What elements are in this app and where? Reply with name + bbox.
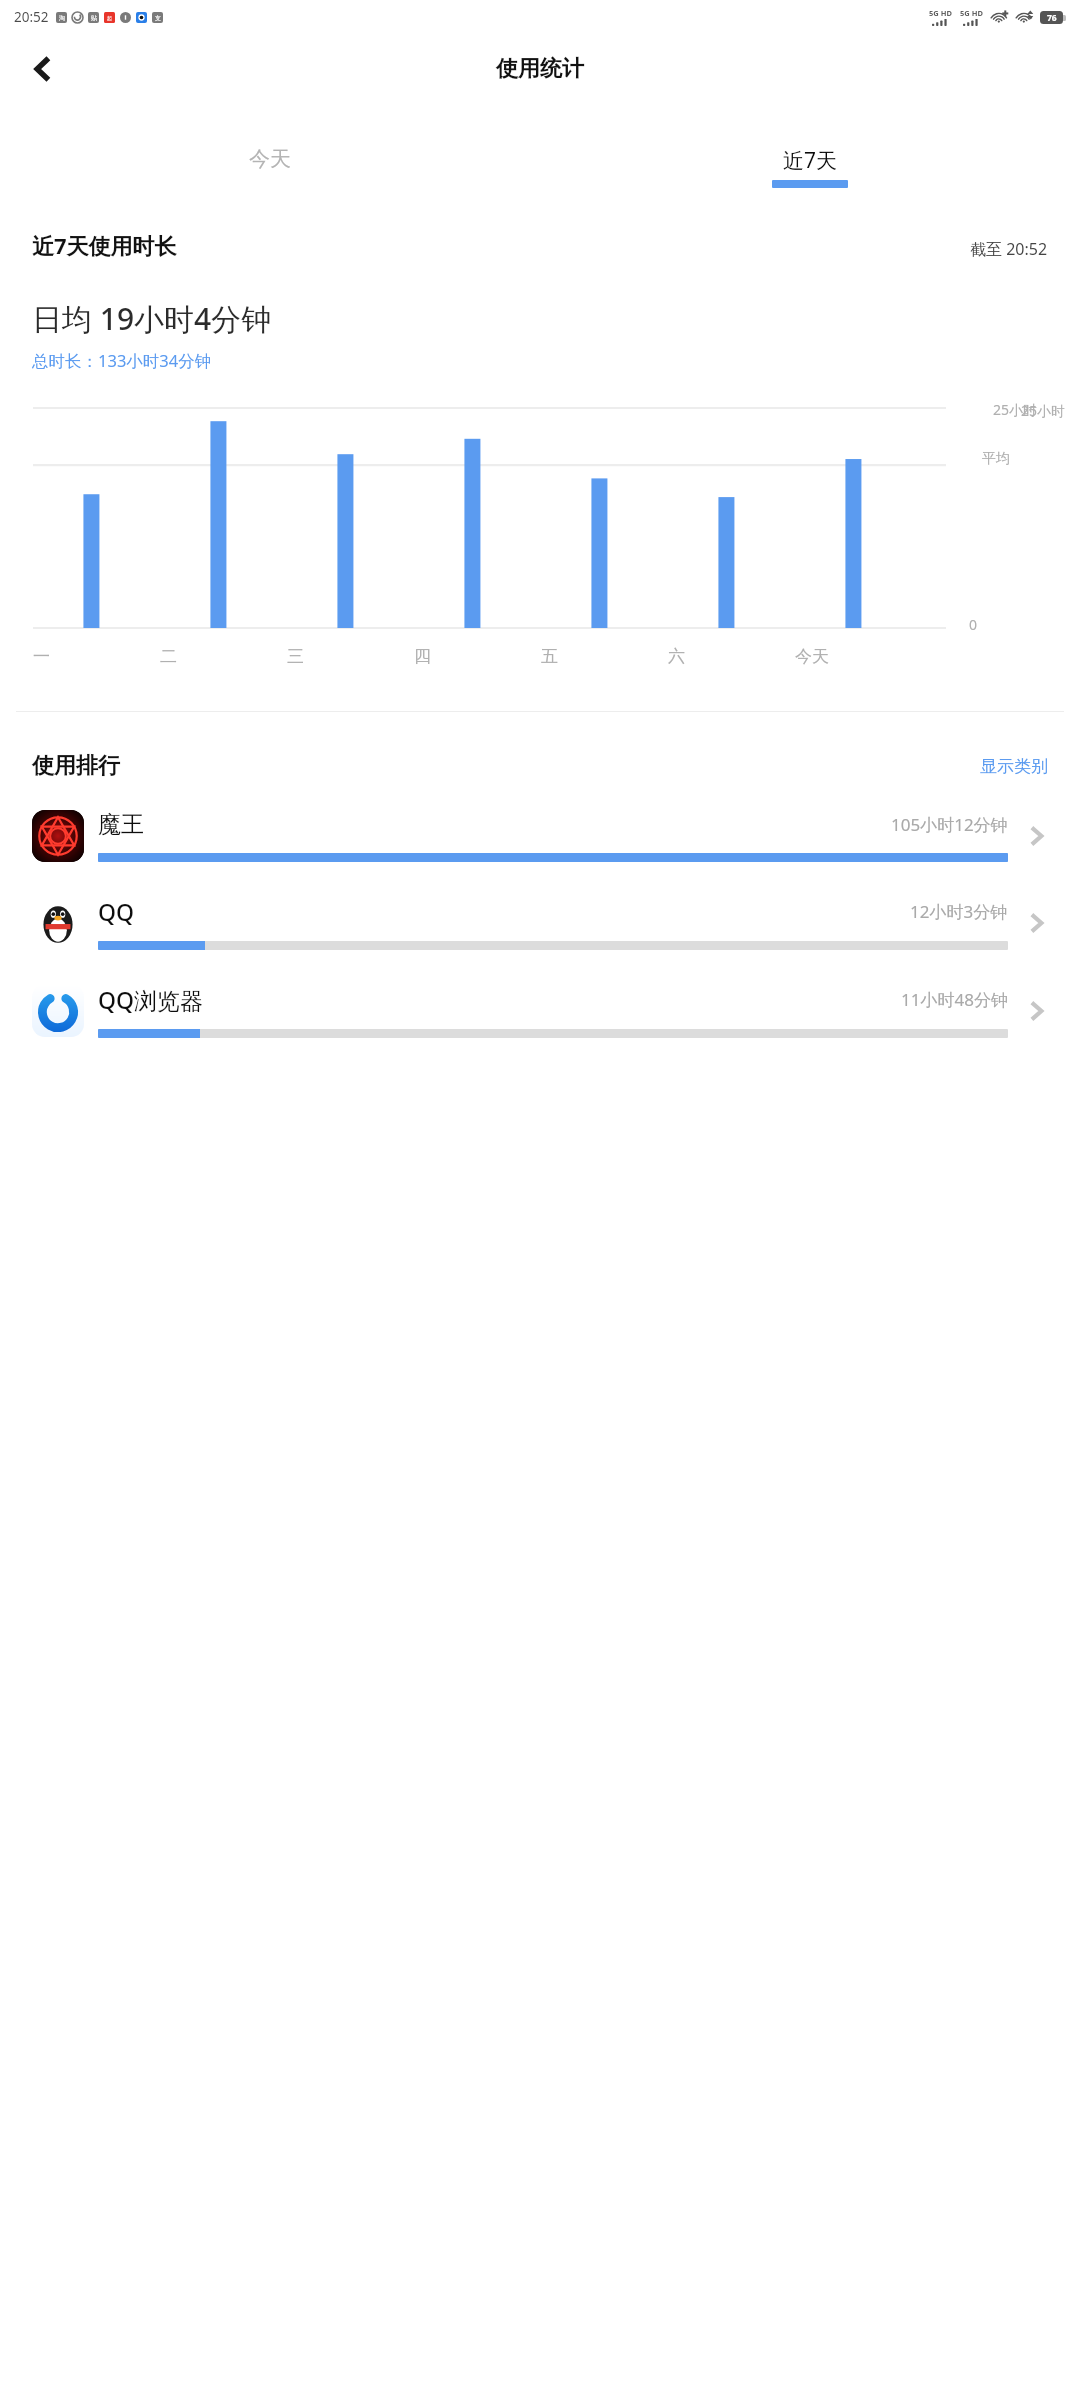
staticText: 今天 (795, 646, 829, 667)
button[interactable]: QQ浏览器 (0, 984, 1080, 1038)
button[interactable]: 显示类别 (980, 756, 1048, 777)
staticText: 三 (287, 646, 304, 667)
staticText: 截至 20:52 (970, 238, 1048, 260)
staticText: 76 (1047, 12, 1057, 24)
staticText: 五 (541, 646, 558, 667)
button[interactable]: 返回 (20, 47, 64, 91)
staticText: 支 (155, 14, 161, 22)
staticText: 二 (160, 646, 177, 667)
staticText: 5G HD (960, 8, 983, 18)
staticText: 使用排行 (32, 752, 120, 780)
staticText: 11小时48分钟 (901, 988, 1008, 1011)
staticText: 20:52 (14, 8, 49, 26)
staticText: 显示类别 (980, 756, 1048, 777)
button[interactable]: 今天 (0, 146, 540, 172)
staticText: 0 (969, 615, 978, 634)
staticText: 一 (33, 646, 50, 667)
staticText: 淘 (59, 14, 65, 22)
staticText: 5G HD (929, 8, 952, 18)
staticText: 12小时3分钟 (910, 900, 1008, 923)
staticText: 105小时12分钟 (891, 813, 1008, 836)
staticText: 日均 19小时4分钟 (32, 298, 272, 339)
staticText: 四 (414, 646, 431, 667)
staticText: 近7天使用时长 (32, 230, 177, 260)
staticText: QQ浏览器 (98, 984, 204, 1015)
button[interactable]: QQ (0, 896, 1080, 950)
staticText: 25小时 (1021, 401, 1066, 420)
staticText: 六 (668, 646, 685, 667)
button[interactable]: 近7天 (540, 146, 1080, 188)
staticText: 起 (107, 15, 112, 21)
staticText: 总时长：133小时34分钟 (32, 349, 212, 372)
button[interactable]: 魔王 (0, 810, 1080, 862)
staticText: 魔王 (98, 810, 144, 839)
staticText: 使用统计 (496, 55, 584, 83)
staticText: 25小时 (993, 400, 1038, 419)
staticText: 今天 (249, 146, 291, 172)
staticText: 贴 (91, 14, 97, 22)
staticText: 近7天 (783, 146, 838, 175)
staticText: QQ (98, 896, 135, 927)
staticText: 平均 (982, 450, 1010, 468)
